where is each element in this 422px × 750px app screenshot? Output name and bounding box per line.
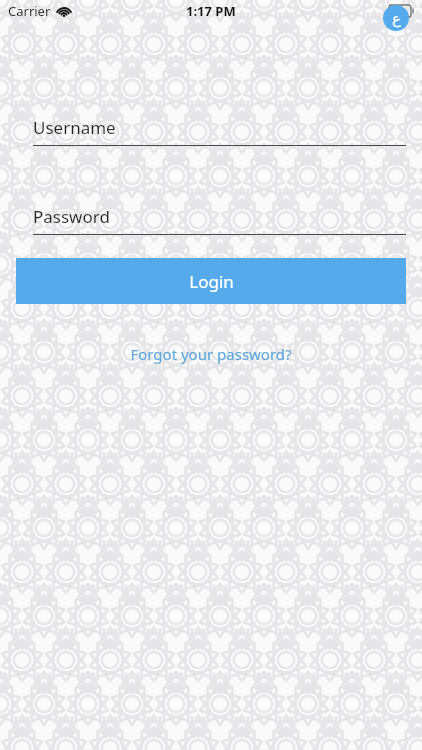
staticText: Username (33, 116, 116, 139)
button[interactable]: Login (16, 258, 406, 304)
staticText: Login (189, 270, 234, 293)
button[interactable]: Forgot your password? (0, 338, 422, 370)
staticText: Password (33, 205, 110, 228)
staticText: Forgot your password? (130, 344, 292, 364)
staticText: 1:17 PM (186, 2, 236, 20)
staticText: ع (392, 10, 401, 27)
staticText: Carrier (8, 2, 51, 20)
